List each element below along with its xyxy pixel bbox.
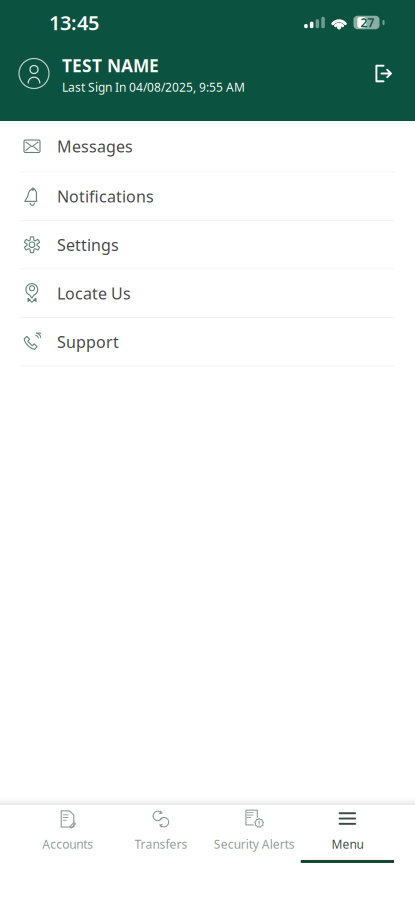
staticText: TEST NAME (62, 54, 159, 77)
staticText: Settings (57, 234, 119, 255)
button[interactable]: Accounts (21, 805, 114, 900)
staticText: Support (57, 331, 119, 352)
staticText: Menu (331, 836, 363, 852)
staticText: Messages (57, 136, 133, 157)
button[interactable]: Messages (0, 121, 415, 172)
staticText: 27 (360, 14, 374, 30)
staticText: Transfers (134, 836, 187, 852)
button[interactable]: Support (0, 318, 415, 366)
button[interactable]: Settings (0, 221, 415, 269)
staticText: Security Alerts (214, 836, 295, 852)
button[interactable]: Locate Us (0, 269, 415, 318)
button[interactable]: Security Alerts (207, 805, 301, 900)
staticText: Notifications (57, 186, 154, 207)
button[interactable]: Menu (301, 805, 394, 900)
button[interactable]: Sign out (362, 52, 415, 94)
staticText: 13:45 (49, 9, 99, 36)
button[interactable]: Notifications (0, 172, 415, 221)
button[interactable]: Transfers (114, 805, 207, 900)
staticText: Accounts (42, 836, 93, 852)
staticText: Last Sign In 04/08/2025, 9:55 AM (62, 79, 245, 95)
staticText: Locate Us (57, 283, 131, 304)
